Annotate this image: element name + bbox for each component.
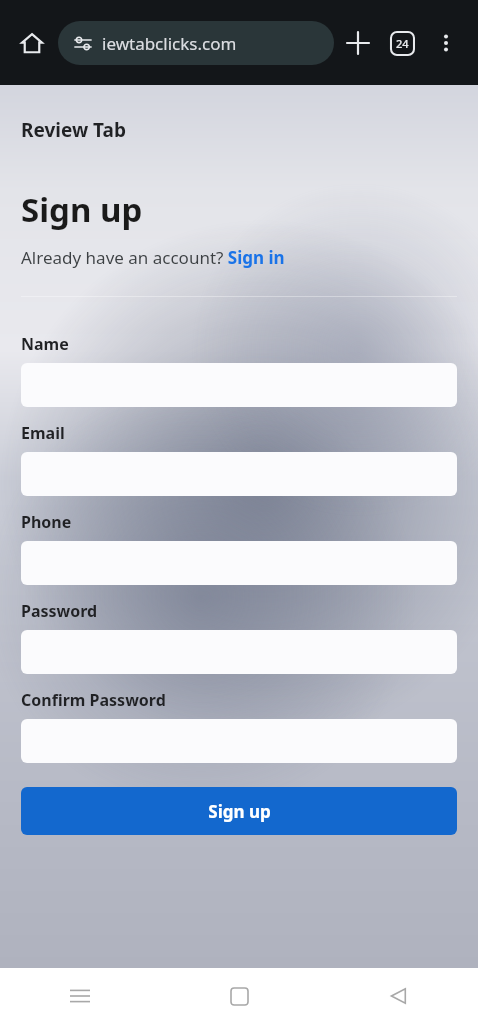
- button[interactable]: Sign up: [21, 787, 457, 835]
- button[interactable]: Home: [10, 21, 54, 65]
- button[interactable]: Recent apps: [0, 968, 160, 1024]
- staticText: Confirm Password: [21, 689, 166, 711]
- staticText: Email: [21, 422, 65, 444]
- staticText: 24: [396, 36, 409, 51]
- staticText: Name: [21, 333, 69, 355]
- staticText: Phone: [21, 511, 72, 533]
- staticText: Password: [21, 600, 98, 622]
- button[interactable]: Review Tab: [21, 117, 126, 143]
- staticText: Review Tab: [21, 117, 126, 143]
- button[interactable]: iewtabclicks.com: [58, 21, 334, 65]
- button[interactable]: Back: [319, 968, 478, 1024]
- staticText: Already have an account? Sign in: [21, 246, 285, 269]
- button[interactable]: Home: [160, 968, 319, 1024]
- staticText: Sign up: [208, 800, 271, 823]
- button[interactable]: More options: [424, 21, 468, 65]
- button[interactable]: Already have an account? Sign in: [21, 246, 285, 269]
- button[interactable]: Switch tabs, 24 open: [380, 21, 424, 65]
- button[interactable]: New tab: [336, 21, 380, 65]
- staticText: Sign up: [21, 187, 143, 232]
- staticText: iewtabclicks.com: [102, 32, 237, 55]
